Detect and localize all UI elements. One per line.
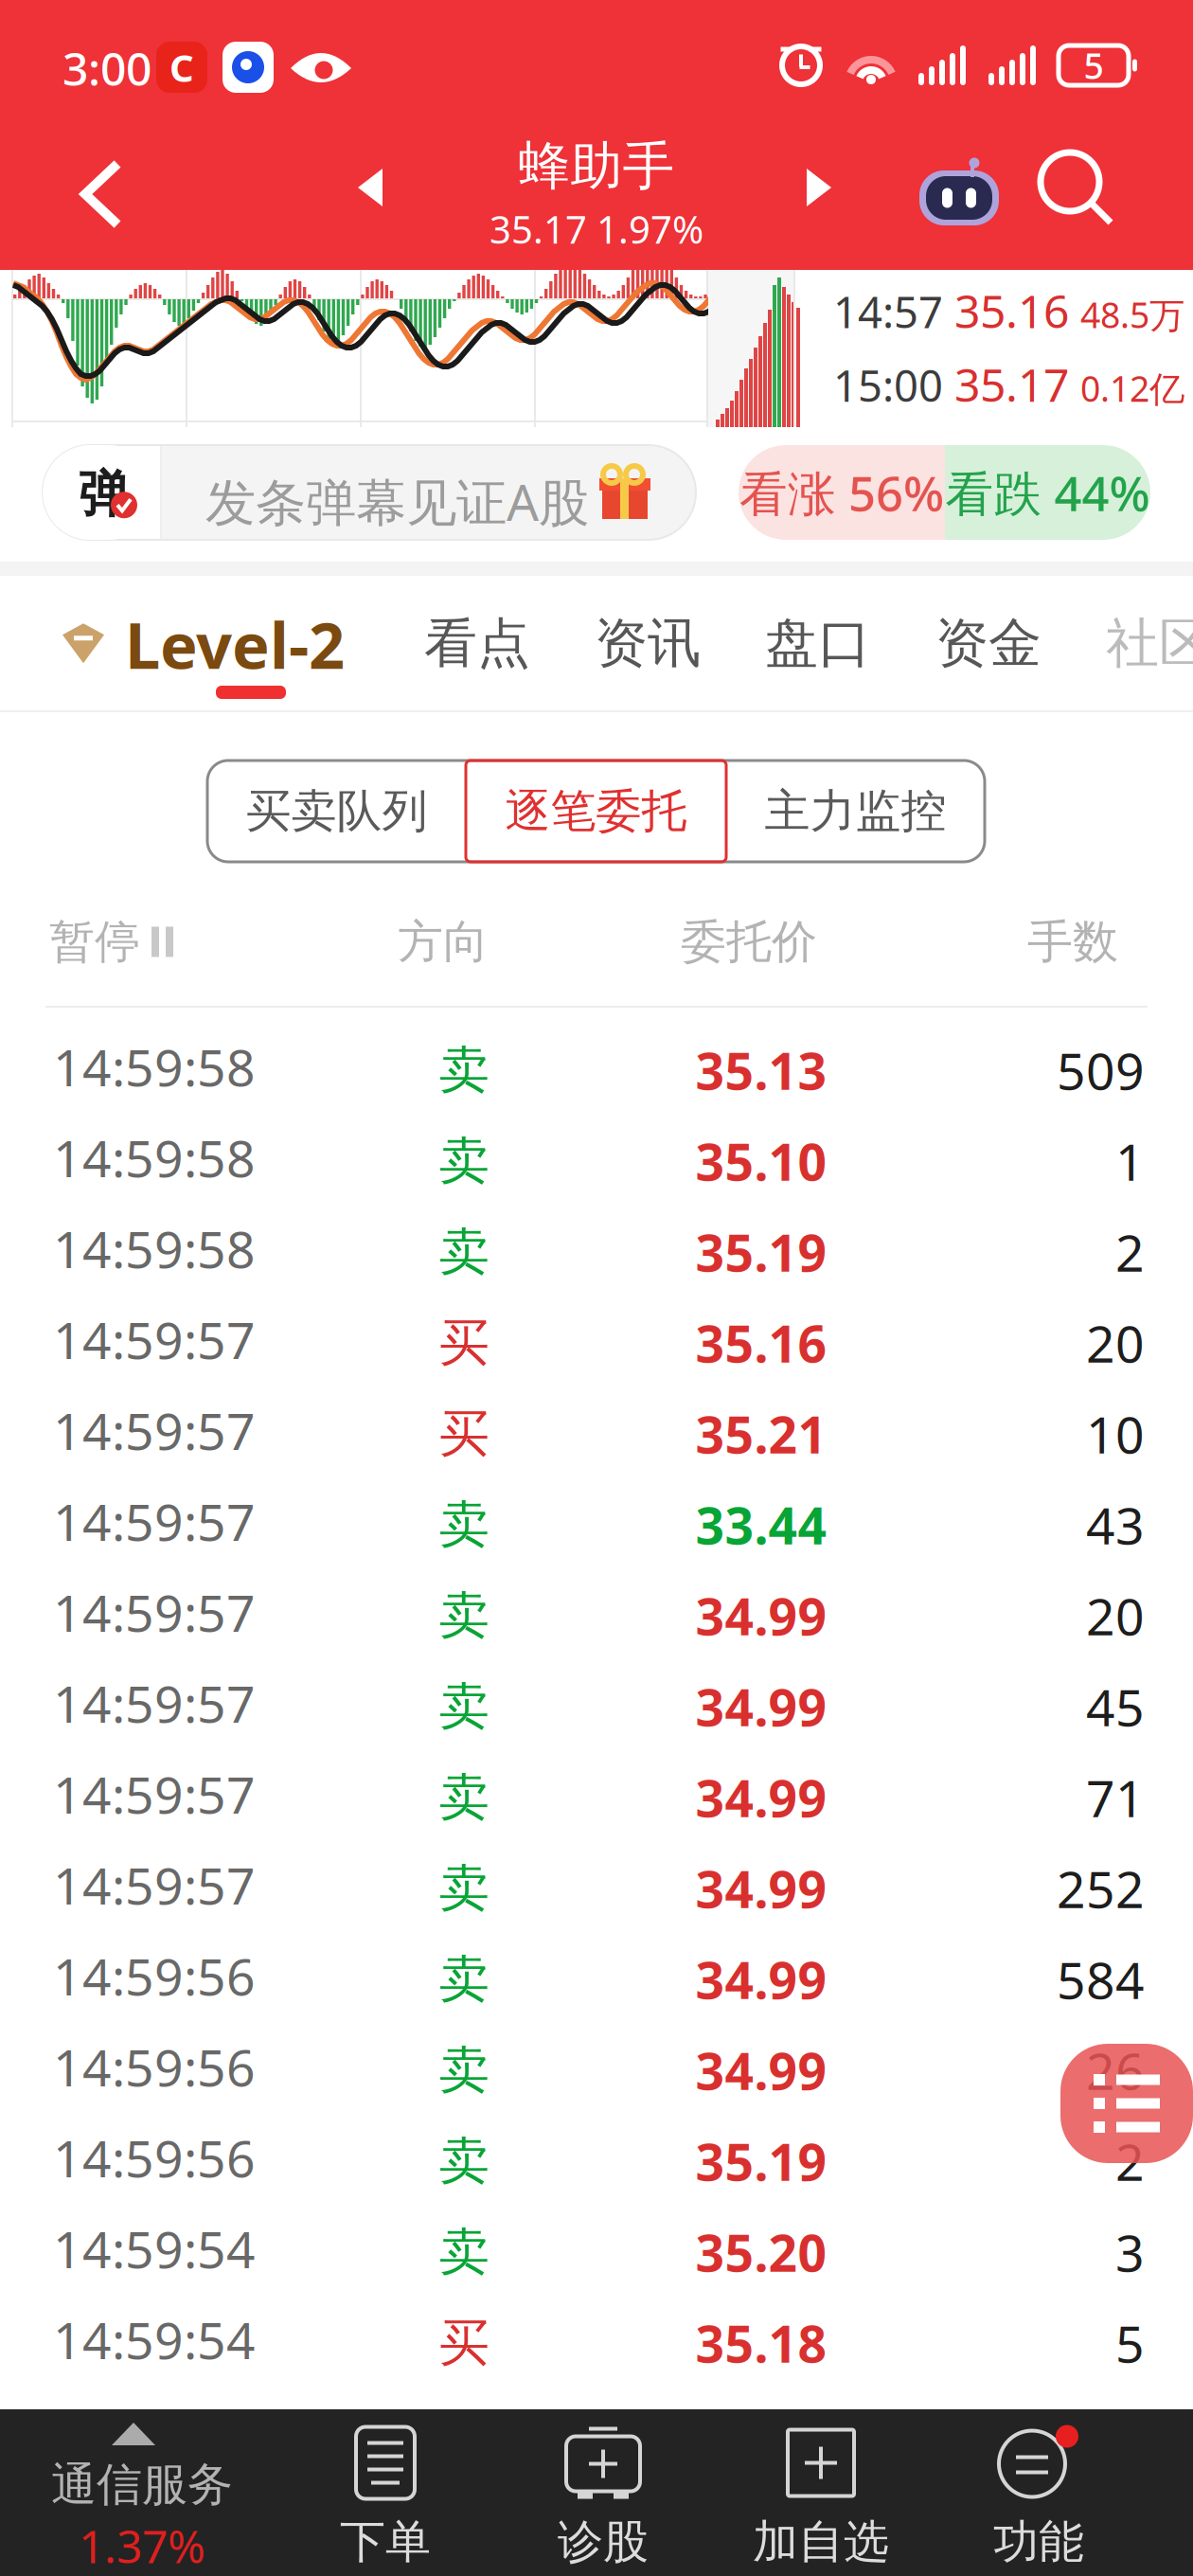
button[interactable]: 14:59:58: [0, 1116, 1193, 1207]
staticText: 加自选: [753, 2514, 889, 2570]
staticText: 14:59:57: [53, 1761, 256, 1828]
staticText: 买: [439, 1403, 489, 1465]
staticText: 35.13: [695, 1037, 827, 1104]
staticText: 45: [1086, 1673, 1145, 1740]
staticText: 35.16: [695, 1309, 827, 1376]
staticText: 14:59:58: [53, 1124, 256, 1191]
staticText: 资讯: [595, 611, 701, 676]
staticText: Level-2: [125, 602, 345, 686]
button[interactable]: 逐笔委托: [466, 760, 726, 862]
staticText: 2: [1115, 2128, 1145, 2195]
staticText: 0.12亿: [1080, 365, 1184, 412]
staticText: 14:59:57: [53, 1397, 256, 1464]
button[interactable]: 14:59:54: [0, 2207, 1193, 2298]
button[interactable]: 资讯: [595, 611, 701, 676]
button[interactable]: Order list: [1060, 2044, 1193, 2163]
staticText: 买: [439, 2312, 489, 2374]
button[interactable]: Level-2: [59, 602, 345, 686]
button[interactable]: 主力监控: [726, 760, 985, 862]
staticText: 2: [1115, 1218, 1145, 1286]
staticText: 35.17: [954, 354, 1069, 414]
staticText: 20: [1086, 1309, 1145, 1376]
button[interactable]: Next stock: [793, 163, 839, 212]
button[interactable]: 加自选: [712, 2426, 930, 2568]
staticText: 看点: [424, 611, 530, 676]
button[interactable]: Back: [64, 151, 151, 236]
staticText: 买: [439, 1312, 489, 1374]
staticText: 看跌 44%: [945, 461, 1150, 524]
staticText: 35.21: [695, 1400, 827, 1467]
staticText: 3:00: [62, 38, 151, 98]
button[interactable]: 资金: [935, 611, 1042, 676]
button[interactable]: 下单: [276, 2426, 494, 2568]
staticText: 48.5万: [1080, 291, 1184, 338]
staticText: 14:59:54: [53, 2306, 256, 2373]
staticText: 33.44: [695, 1491, 827, 1558]
staticText: 14:59:57: [53, 1306, 256, 1373]
staticText: 蜂助手: [518, 134, 675, 198]
staticText: 1: [1115, 1128, 1145, 1195]
staticText: 卖: [439, 1857, 489, 1919]
staticText: 下单: [340, 2514, 431, 2570]
staticText: 14:59:56: [53, 1942, 256, 2009]
button[interactable]: 14:59:58: [0, 1207, 1193, 1297]
button[interactable]: 14:59:57: [0, 1297, 1193, 1388]
staticText: 手数: [1027, 914, 1118, 970]
button[interactable]: 14:59:57: [0, 1843, 1193, 1934]
button[interactable]: Previous stock: [350, 163, 396, 212]
staticText: 14:59:57: [53, 1488, 256, 1555]
staticText: 15:00: [833, 357, 943, 414]
staticText: 14:59:57: [53, 1670, 256, 1737]
staticText: 34.99: [695, 2037, 827, 2104]
staticText: 卖: [439, 1948, 489, 2010]
button[interactable]: 通信服务: [0, 2409, 284, 2576]
staticText: 卖: [439, 2039, 489, 2101]
button[interactable]: 14:59:57: [0, 1570, 1193, 1661]
button[interactable]: Send a comment: [43, 445, 696, 540]
button[interactable]: 14:59:57: [0, 1479, 1193, 1570]
staticText: 34.99: [695, 1855, 827, 1922]
staticText: 35.10: [695, 1128, 827, 1195]
button[interactable]: 买卖队列: [207, 760, 466, 862]
button[interactable]: 功能: [930, 2426, 1148, 2568]
staticText: 35.20: [695, 2219, 827, 2286]
button[interactable]: 14:59:56: [0, 2116, 1193, 2207]
button[interactable]: 14:59:56: [0, 2025, 1193, 2116]
staticText: 34.99: [695, 1582, 827, 1649]
button[interactable]: 看点: [424, 611, 530, 676]
staticText: 主力监控: [765, 783, 946, 839]
staticText: 14:59:57: [53, 1851, 256, 1919]
button[interactable]: 盘口: [765, 611, 871, 676]
button[interactable]: 蜂助手: [445, 134, 748, 254]
staticText: 买卖队列: [246, 783, 427, 839]
staticText: 逐笔委托: [505, 783, 687, 839]
button[interactable]: Search: [1037, 147, 1124, 234]
button[interactable]: 14:59:57: [0, 1752, 1193, 1843]
staticText: 252: [1057, 1855, 1145, 1922]
staticText: 35.18: [695, 2309, 827, 2377]
staticText: 34.99: [695, 1764, 827, 1831]
button[interactable]: 14:59:58: [0, 1025, 1193, 1116]
staticText: 资金: [935, 611, 1042, 676]
button[interactable]: 14:59:57: [0, 1388, 1193, 1479]
staticText: 14:59:58: [53, 1215, 256, 1282]
staticText: 卖: [439, 1585, 489, 1647]
button[interactable]: 14:59:54: [0, 2298, 1193, 2388]
staticText: 26: [1086, 2037, 1145, 2104]
button[interactable]: 14:59:57: [0, 1661, 1193, 1752]
button[interactable]: Bull versus bear sentiment: [739, 445, 1150, 540]
button[interactable]: 诊股: [494, 2426, 712, 2568]
staticText: 诊股: [558, 2514, 649, 2570]
staticText: 71: [1086, 1764, 1145, 1831]
staticText: 卖: [439, 1221, 489, 1283]
staticText: 盘口: [765, 611, 871, 676]
staticText: 弹: [79, 463, 129, 525]
button[interactable]: 14:59:56: [0, 1934, 1193, 2025]
staticText: 43: [1086, 1491, 1145, 1558]
staticText: 功能: [993, 2514, 1084, 2570]
staticText: 方向: [398, 914, 489, 970]
staticText: 通信服务: [51, 2457, 233, 2513]
button[interactable]: AI assistant: [914, 147, 1005, 234]
staticText: 卖: [439, 2130, 489, 2192]
staticText: 卖: [439, 1676, 489, 1738]
